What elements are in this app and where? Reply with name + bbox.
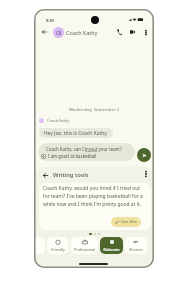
staticText: Coach Kathy, can I tryout your team? xyxy=(46,146,122,152)
staticText: Hey Joe, this is Coach Kathy. xyxy=(44,130,108,137)
staticText: CK xyxy=(56,30,62,36)
button[interactable]: Back xyxy=(37,25,51,39)
staticText: Shorten xyxy=(129,247,143,252)
button[interactable]: More options xyxy=(140,26,152,38)
button[interactable]: Elaborate xyxy=(100,237,123,254)
button[interactable]: Professional xyxy=(71,237,98,254)
button[interactable]: Back xyxy=(38,168,52,182)
button[interactable]: Call xyxy=(113,26,125,38)
staticText: I am good at basketball xyxy=(48,153,97,159)
staticText: Writing tools xyxy=(53,171,89,179)
staticText: Wednesday, September 3 xyxy=(69,107,119,113)
staticText: Friendly xyxy=(51,247,65,252)
button[interactable]: Send xyxy=(137,148,151,162)
staticText: Elaborate xyxy=(103,247,120,252)
staticText: Coach Kathy xyxy=(47,118,70,123)
button[interactable]: Coach Kathy, would you mind if I tried o… xyxy=(39,183,151,230)
staticText: 9:30 xyxy=(46,18,54,23)
button[interactable]: More options xyxy=(140,168,152,180)
button[interactable]: Friendly xyxy=(47,237,68,254)
staticText: Coach Kathy, would you mind if I tried o… xyxy=(43,185,147,208)
button[interactable]: CK xyxy=(53,27,64,38)
button[interactable]: Video call xyxy=(126,26,138,38)
button[interactable]: Use this xyxy=(111,217,141,227)
staticText: Use this xyxy=(121,219,137,225)
staticText: Coach Kathy xyxy=(66,29,98,36)
button[interactable]: Hey Joe, this is Coach Kathy. xyxy=(39,128,113,138)
button[interactable]: ly xyxy=(34,237,45,254)
button[interactable]: Coach Kathy, can I tryout your team? xyxy=(38,143,135,161)
staticText: Professional xyxy=(74,247,95,252)
button[interactable]: Shorten xyxy=(125,237,147,254)
